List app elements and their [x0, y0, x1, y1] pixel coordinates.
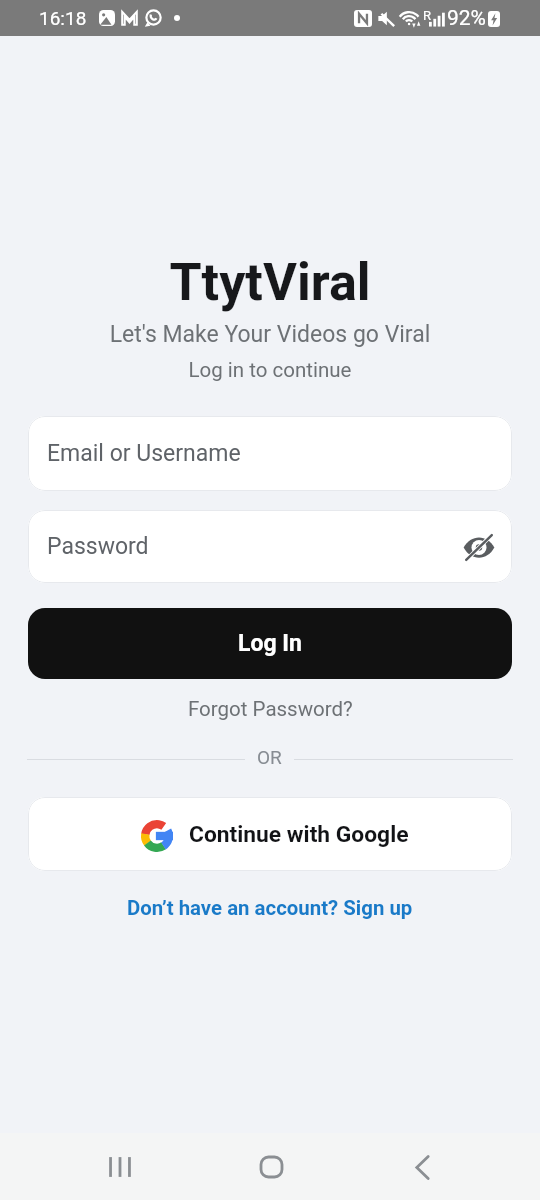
- button[interactable]: Recent apps: [68, 1134, 171, 1200]
- button[interactable]: Home: [220, 1134, 323, 1200]
- staticText: Continue with Google: [189, 821, 409, 848]
- staticText: Password: [47, 533, 149, 560]
- staticText: Email or Username: [47, 440, 241, 467]
- button[interactable]: Continue with Google: [28, 797, 512, 871]
- staticText: R: [423, 8, 432, 23]
- button[interactable]: Password: [28, 510, 512, 583]
- staticText: 16:18: [39, 7, 87, 29]
- button[interactable]: Forgot Password?: [180, 693, 361, 725]
- staticText: Log In: [238, 630, 302, 657]
- button[interactable]: Show password: [459, 527, 499, 567]
- staticText: OR: [257, 746, 282, 768]
- button[interactable]: Email or Username: [28, 416, 512, 491]
- staticText: TtytViral: [0, 252, 540, 313]
- button[interactable]: Don’t have an account? Sign up: [119, 892, 421, 924]
- button[interactable]: Back: [371, 1134, 474, 1200]
- staticText: Forgot Password?: [188, 697, 353, 721]
- staticText: Log in to continue: [0, 358, 540, 382]
- staticText: 92%: [447, 6, 486, 31]
- button[interactable]: Log In: [28, 608, 512, 679]
- staticText: Don’t have an account? Sign up: [127, 896, 413, 920]
- staticText: Let's Make Your Videos go Viral: [0, 321, 540, 348]
